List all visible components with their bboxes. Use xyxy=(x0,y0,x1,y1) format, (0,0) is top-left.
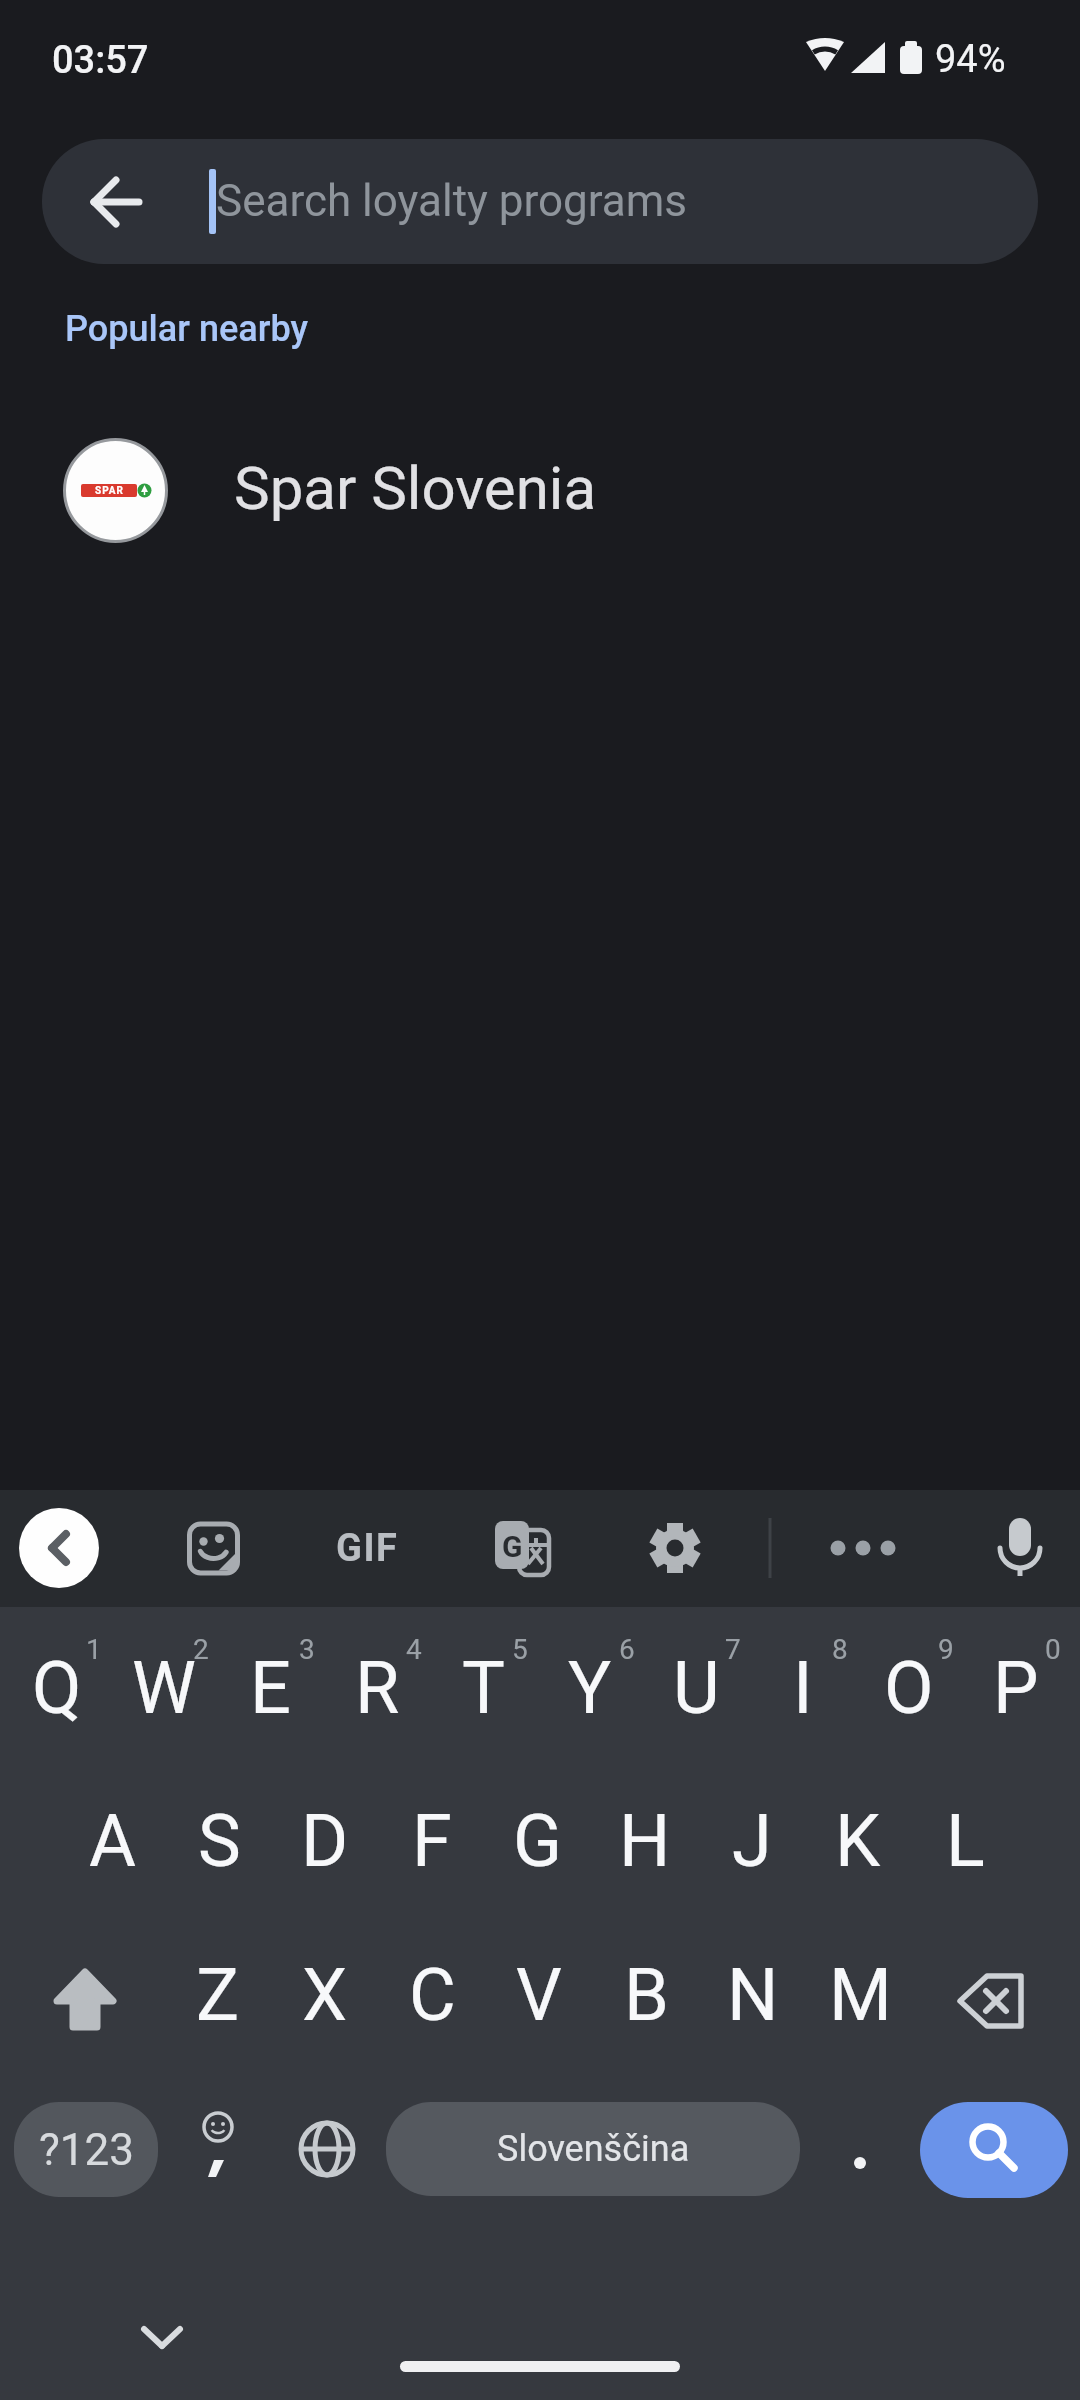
button[interactable]: GIF xyxy=(307,1508,427,1588)
staticText: GIF xyxy=(336,1526,399,1571)
button[interactable]: F xyxy=(380,1767,484,1915)
staticText: W xyxy=(132,1646,196,1730)
button[interactable] xyxy=(19,1508,99,1588)
button[interactable] xyxy=(939,1941,1047,2049)
staticText: U xyxy=(673,1646,720,1730)
button[interactable]: P xyxy=(964,1614,1068,1762)
button[interactable] xyxy=(273,2095,381,2203)
button[interactable]: ?123 xyxy=(14,2102,158,2197)
button[interactable]: C xyxy=(380,1921,484,2069)
staticText: ?123 xyxy=(39,2124,134,2176)
button[interactable] xyxy=(818,1503,908,1593)
staticText: Z xyxy=(196,1953,240,2037)
staticText: 1 xyxy=(86,1633,102,1665)
staticText: A xyxy=(89,1799,136,1883)
button[interactable] xyxy=(478,1503,568,1593)
button[interactable]: R xyxy=(325,1614,429,1762)
staticText: 94% xyxy=(935,37,1006,82)
staticText: C xyxy=(409,1953,456,2037)
staticText: 6 xyxy=(619,1633,635,1665)
staticText: Search loyalty programs xyxy=(216,175,688,227)
staticText: K xyxy=(835,1799,881,1883)
staticText: R xyxy=(355,1646,400,1730)
button[interactable]: O xyxy=(857,1614,961,1762)
button[interactable] xyxy=(806,2095,914,2203)
button[interactable]: S xyxy=(167,1767,271,1915)
staticText: L xyxy=(946,1799,985,1883)
button[interactable]: N xyxy=(701,1921,805,2069)
staticText: G xyxy=(513,1799,563,1883)
button[interactable] xyxy=(920,2102,1068,2198)
button[interactable] xyxy=(112,2287,212,2387)
staticText: 2 xyxy=(193,1633,209,1665)
staticText: D xyxy=(301,1799,349,1883)
button[interactable] xyxy=(0,429,1080,553)
staticText: 03:57 xyxy=(52,38,149,83)
staticText: 0 xyxy=(1045,1633,1061,1665)
button[interactable]: A xyxy=(60,1767,164,1915)
staticText: 3 xyxy=(299,1633,315,1665)
button[interactable]: L xyxy=(913,1767,1017,1915)
staticText: X xyxy=(302,1953,348,2037)
staticText: P xyxy=(993,1646,1039,1730)
staticText: S xyxy=(198,1799,241,1883)
button[interactable]: J xyxy=(700,1767,804,1915)
staticText: I xyxy=(793,1646,813,1730)
button[interactable]: Q xyxy=(5,1614,109,1762)
button[interactable] xyxy=(167,2095,275,2203)
button[interactable] xyxy=(630,1503,720,1593)
button[interactable] xyxy=(42,139,1038,264)
button[interactable] xyxy=(322,1503,412,1593)
staticText: T xyxy=(462,1646,505,1730)
button[interactable]: Y xyxy=(538,1614,642,1762)
button[interactable] xyxy=(975,1503,1065,1593)
button[interactable] xyxy=(31,1941,139,2049)
button[interactable]: K xyxy=(806,1767,910,1915)
staticText: N xyxy=(727,1953,779,2037)
staticText: V xyxy=(516,1953,562,2037)
button[interactable]: M xyxy=(808,1921,912,2069)
button[interactable]: G xyxy=(486,1767,590,1915)
staticText: F xyxy=(412,1799,452,1883)
button[interactable]: Slovenščina xyxy=(386,2102,800,2196)
staticText: B xyxy=(624,1953,669,2037)
button[interactable]: V xyxy=(487,1921,591,2069)
staticText: 4 xyxy=(406,1633,422,1665)
staticText: 7 xyxy=(725,1633,741,1665)
button[interactable]: D xyxy=(273,1767,377,1915)
button[interactable]: I xyxy=(751,1614,855,1762)
staticText: Spar Slovenia xyxy=(234,453,597,523)
button[interactable] xyxy=(168,1503,258,1593)
staticText: Y xyxy=(568,1646,612,1730)
staticText: M xyxy=(829,1953,892,2037)
button[interactable]: B xyxy=(594,1921,698,2069)
staticText: SPAR xyxy=(95,485,124,497)
staticText: 9 xyxy=(938,1633,954,1665)
button[interactable]: U xyxy=(644,1614,748,1762)
button[interactable]: E xyxy=(218,1614,322,1762)
staticText: E xyxy=(250,1646,291,1730)
button[interactable]: W xyxy=(112,1614,216,1762)
staticText: Q xyxy=(32,1646,82,1730)
staticText: 5 xyxy=(512,1633,528,1665)
button[interactable]: Z xyxy=(166,1921,270,2069)
button[interactable]: X xyxy=(273,1921,377,2069)
staticText: Popular nearby xyxy=(65,308,308,350)
staticText: O xyxy=(884,1646,934,1730)
staticText: 8 xyxy=(832,1633,848,1665)
staticText: J xyxy=(732,1799,772,1883)
button[interactable]: T xyxy=(431,1614,535,1762)
staticText: Slovenščina xyxy=(497,2128,690,2170)
button[interactable]: H xyxy=(593,1767,697,1915)
staticText: G xyxy=(502,1529,523,1564)
staticText: H xyxy=(619,1799,671,1883)
